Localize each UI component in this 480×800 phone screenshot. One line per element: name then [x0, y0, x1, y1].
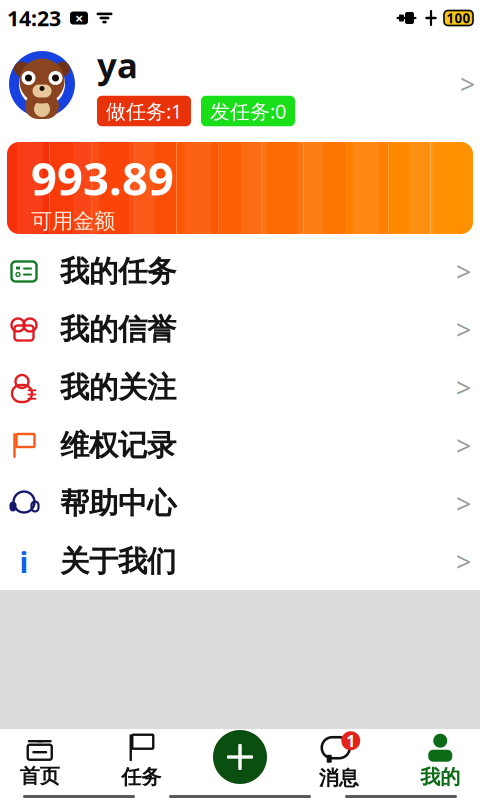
button[interactable]: 1 — [288, 729, 389, 793]
staticText: > — [460, 66, 475, 102]
staticText: 维权记录 — [60, 427, 176, 463]
staticText: 关于我们 — [60, 543, 176, 579]
staticText: 任务 — [121, 765, 161, 789]
staticText: × — [75, 8, 83, 28]
button[interactable]: 维权记录 — [0, 417, 480, 474]
staticText: 发任务:0 — [210, 98, 286, 124]
staticText: 首页 — [20, 764, 60, 788]
staticText: 消息 — [319, 766, 359, 790]
staticText: 我的关注 — [60, 369, 176, 405]
staticText: > — [456, 312, 471, 347]
button[interactable]: 我的信誉 — [0, 301, 480, 358]
staticText: > — [456, 486, 471, 521]
staticText: 我的 — [420, 765, 460, 789]
staticText: > — [456, 370, 471, 405]
button[interactable]: 首页 — [0, 729, 90, 793]
staticText: 1 — [346, 730, 355, 751]
button[interactable]: 任务 — [90, 729, 192, 793]
staticText: 993.89 — [31, 148, 174, 208]
staticText: 我的任务 — [60, 253, 176, 289]
button[interactable]: 我的 — [389, 729, 480, 793]
staticText: 100 — [446, 9, 470, 27]
button[interactable]: ya — [0, 36, 480, 132]
staticText: 可用金额 — [31, 208, 115, 234]
staticText: > — [456, 254, 471, 289]
button[interactable]: 我的关注 — [0, 359, 480, 416]
button[interactable]: i — [0, 533, 480, 590]
button[interactable]: 我的任务 — [0, 243, 480, 300]
staticText: > — [456, 428, 471, 463]
staticText: 帮助中心 — [60, 485, 176, 521]
staticText: i — [19, 542, 28, 581]
button[interactable]: 帮助中心 — [0, 475, 480, 532]
staticText: 我的信誉 — [60, 311, 176, 347]
button[interactable]: 新建 — [213, 730, 267, 784]
staticText: > — [456, 544, 471, 579]
staticText: 14:23 — [7, 4, 61, 32]
button[interactable]: 993.89 — [0, 142, 480, 234]
staticText: ya — [97, 42, 138, 88]
staticText: 做任务:1 — [106, 98, 182, 124]
